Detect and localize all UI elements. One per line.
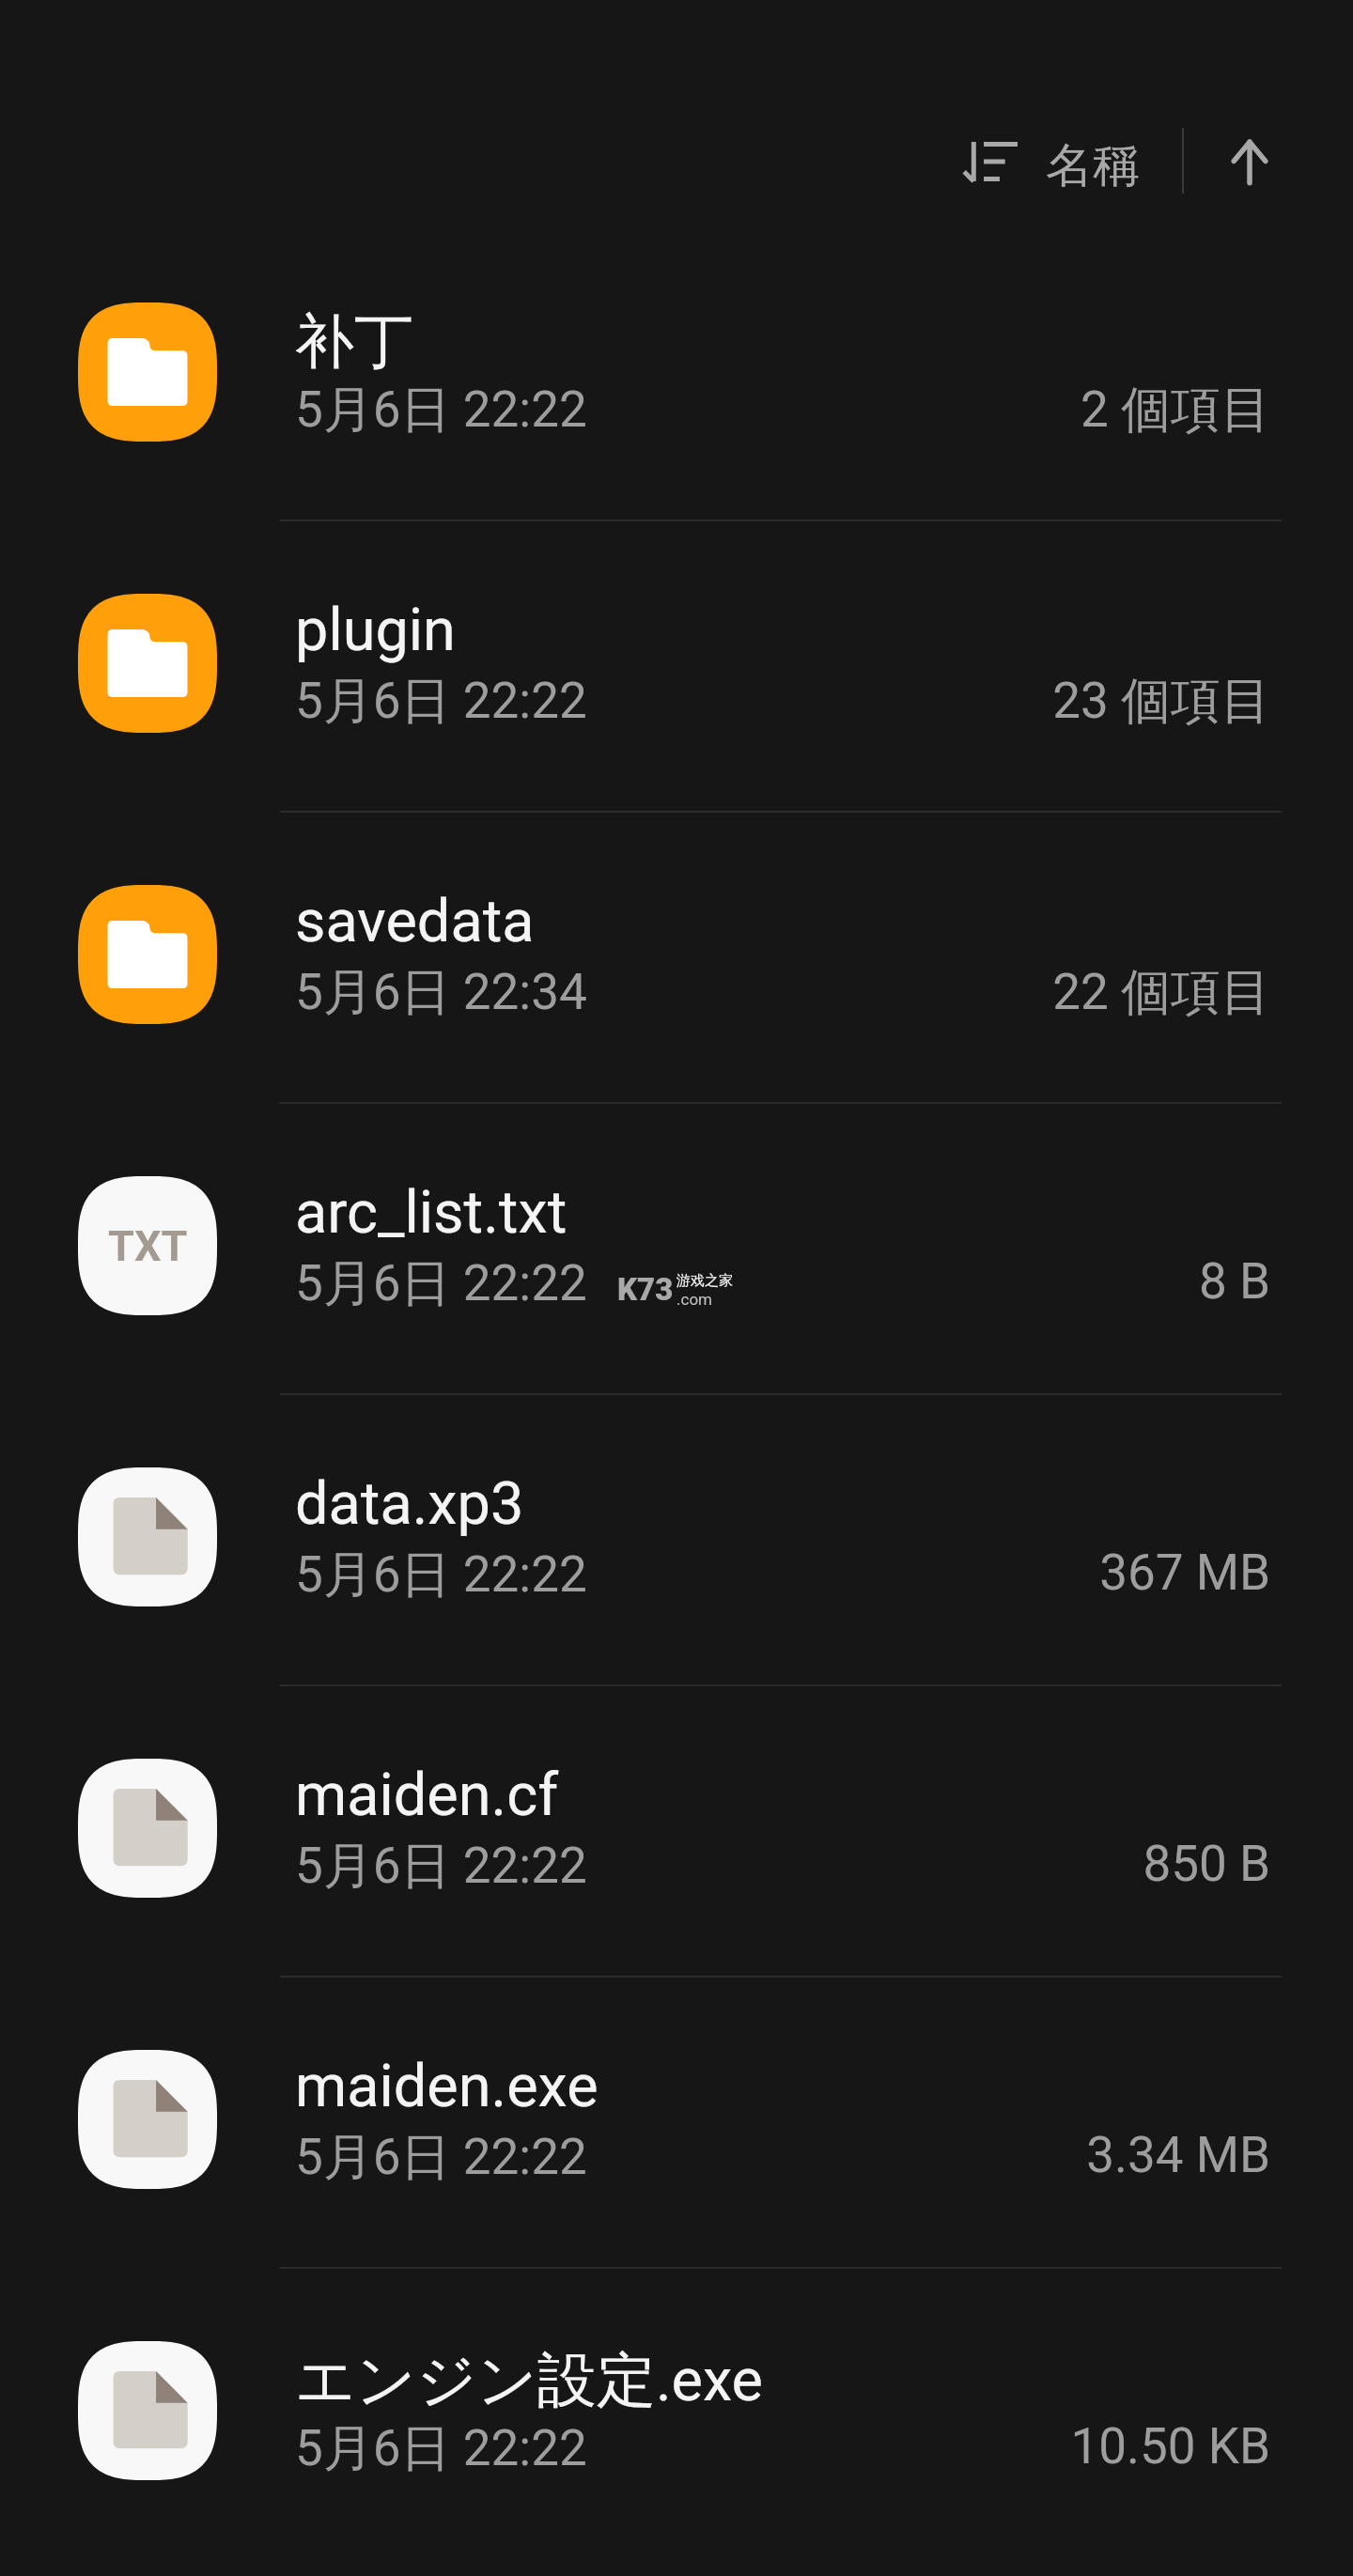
staticText: data.xp3 (295, 1469, 524, 1539)
staticText: 5月6日 22:22 (295, 1252, 587, 1315)
staticText: 5月6日 22:22 (295, 2126, 587, 2189)
staticText: 2 個項目 (0, 379, 1270, 442)
staticText: 3.34 MB (0, 2126, 1270, 2184)
staticText: 5月6日 22:22 (295, 379, 587, 442)
staticText: 5月6日 22:22 (295, 670, 587, 733)
button[interactable]: 补丁 (0, 230, 1353, 521)
button[interactable]: maiden.cf (0, 1686, 1353, 1978)
staticText: 游戏之家 (676, 1272, 733, 1290)
staticText: 名稱 (1046, 136, 1140, 195)
staticText: 850 B (0, 1835, 1270, 1893)
staticText: 5月6日 22:22 (295, 1835, 587, 1898)
staticText: K73 (617, 1271, 674, 1308)
staticText: 5月6日 22:22 (295, 1544, 587, 1606)
staticText: maiden.exe (295, 2052, 599, 2121)
staticText: plugin (295, 596, 456, 665)
button[interactable]: 名稱 (944, 116, 1159, 201)
staticText: 10.50 KB (0, 2417, 1270, 2475)
staticText: .com (676, 1290, 712, 1309)
button[interactable]: plugin (0, 521, 1353, 813)
button[interactable]: savedata (0, 813, 1353, 1104)
button[interactable]: Sort ascending (1198, 111, 1301, 214)
button[interactable]: TXT (0, 1104, 1353, 1395)
button[interactable]: data.xp3 (0, 1395, 1353, 1686)
staticText: エンジン設定.exe (295, 2343, 763, 2417)
button[interactable]: maiden.exe (0, 1978, 1353, 2269)
staticText: 5月6日 22:22 (295, 2417, 587, 2480)
staticText: 23 個項目 (0, 670, 1270, 733)
staticText: 5月6日 22:34 (295, 961, 587, 1024)
staticText: 22 個項目 (0, 961, 1270, 1024)
staticText: savedata (295, 887, 535, 956)
staticText: maiden.cf (295, 1761, 559, 1830)
staticText: TXT (108, 1221, 188, 1271)
button[interactable]: エンジン設定.exe (0, 2269, 1353, 2560)
staticText: 补丁 (295, 304, 413, 379)
staticText: arc_list.txt (295, 1178, 568, 1248)
staticText: 8 B (0, 1252, 1270, 1311)
staticText: 367 MB (0, 1544, 1270, 1602)
